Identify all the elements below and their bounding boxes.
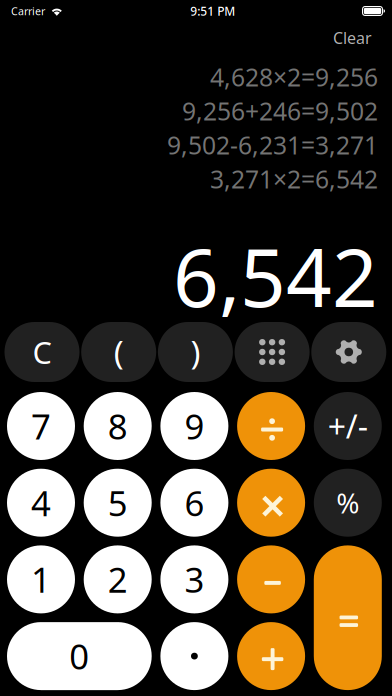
- button[interactable]: 5: [84, 469, 152, 537]
- staticText: 9:51 PM: [190, 3, 235, 19]
- staticText: 9,256+246=9,502: [182, 94, 378, 128]
- staticText: 8: [108, 402, 128, 450]
- staticText: Carrier: [11, 4, 45, 18]
- button[interactable]: Zero: [7, 622, 152, 690]
- staticText: 1: [31, 556, 51, 603]
- staticText: 3,271×2=6,542: [210, 162, 378, 196]
- button[interactable]: Equals: [314, 545, 382, 690]
- button[interactable]: 1: [7, 545, 75, 613]
- button[interactable]: 6: [160, 469, 228, 537]
- button[interactable]: Decimal point: [160, 622, 228, 690]
- button[interactable]: 2: [84, 545, 152, 613]
- staticText: 7: [31, 402, 51, 450]
- staticText: 5: [108, 479, 128, 526]
- staticText: 9,502-6,231=3,271: [167, 128, 378, 162]
- button[interactable]: Percent: [314, 469, 382, 537]
- button[interactable]: 8: [84, 392, 152, 460]
- button[interactable]: 7: [7, 392, 75, 460]
- button[interactable]: Divide: [237, 392, 305, 460]
- staticText: 3: [184, 556, 204, 603]
- staticText: 2: [108, 556, 128, 603]
- button[interactable]: Clear entry: [4, 322, 79, 382]
- staticText: 4: [31, 479, 51, 526]
- button[interactable]: 3: [160, 545, 228, 613]
- staticText: 9: [184, 402, 204, 450]
- button[interactable]: Toggle sign: [314, 392, 382, 460]
- staticText: 4,628×2=9,256: [210, 60, 378, 94]
- staticText: 0: [69, 632, 89, 680]
- button[interactable]: 4: [7, 469, 75, 537]
- staticText: (: [114, 329, 124, 375]
- button[interactable]: Plus: [237, 622, 305, 690]
- button[interactable]: Open parenthesis: [81, 322, 156, 382]
- button[interactable]: Close parenthesis: [158, 322, 233, 382]
- button[interactable]: 9: [160, 392, 228, 460]
- staticText: +/-: [328, 404, 368, 448]
- button[interactable]: Settings: [311, 322, 386, 382]
- staticText: %: [336, 484, 359, 522]
- staticText: ): [190, 329, 200, 375]
- staticText: Clear: [333, 27, 372, 49]
- button[interactable]: Clear: [324, 22, 381, 54]
- button[interactable]: Multiply: [237, 469, 305, 537]
- staticText: C: [32, 331, 51, 373]
- button[interactable]: Keypad: [235, 322, 310, 382]
- button[interactable]: Minus: [237, 545, 305, 613]
- staticText: 6,542: [173, 221, 378, 330]
- staticText: 6: [184, 479, 204, 526]
